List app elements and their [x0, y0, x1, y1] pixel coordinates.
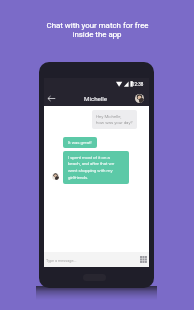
staticText: It was great!	[68, 140, 92, 145]
button[interactable]: Emoji keyboard	[139, 255, 148, 264]
staticText: inside the app	[72, 30, 122, 39]
staticText: Hey Michelle, how was your day?	[96, 114, 133, 125]
staticText: Chat with your match for free	[46, 21, 149, 30]
button[interactable]: Back	[45, 92, 57, 104]
staticText: 12:38	[132, 82, 144, 87]
staticText: Michelle	[84, 95, 108, 102]
staticText: I spent most of it on a beach, and after…	[68, 155, 115, 180]
button[interactable]: Profile	[135, 94, 144, 103]
staticText: Type a message...	[46, 258, 77, 262]
